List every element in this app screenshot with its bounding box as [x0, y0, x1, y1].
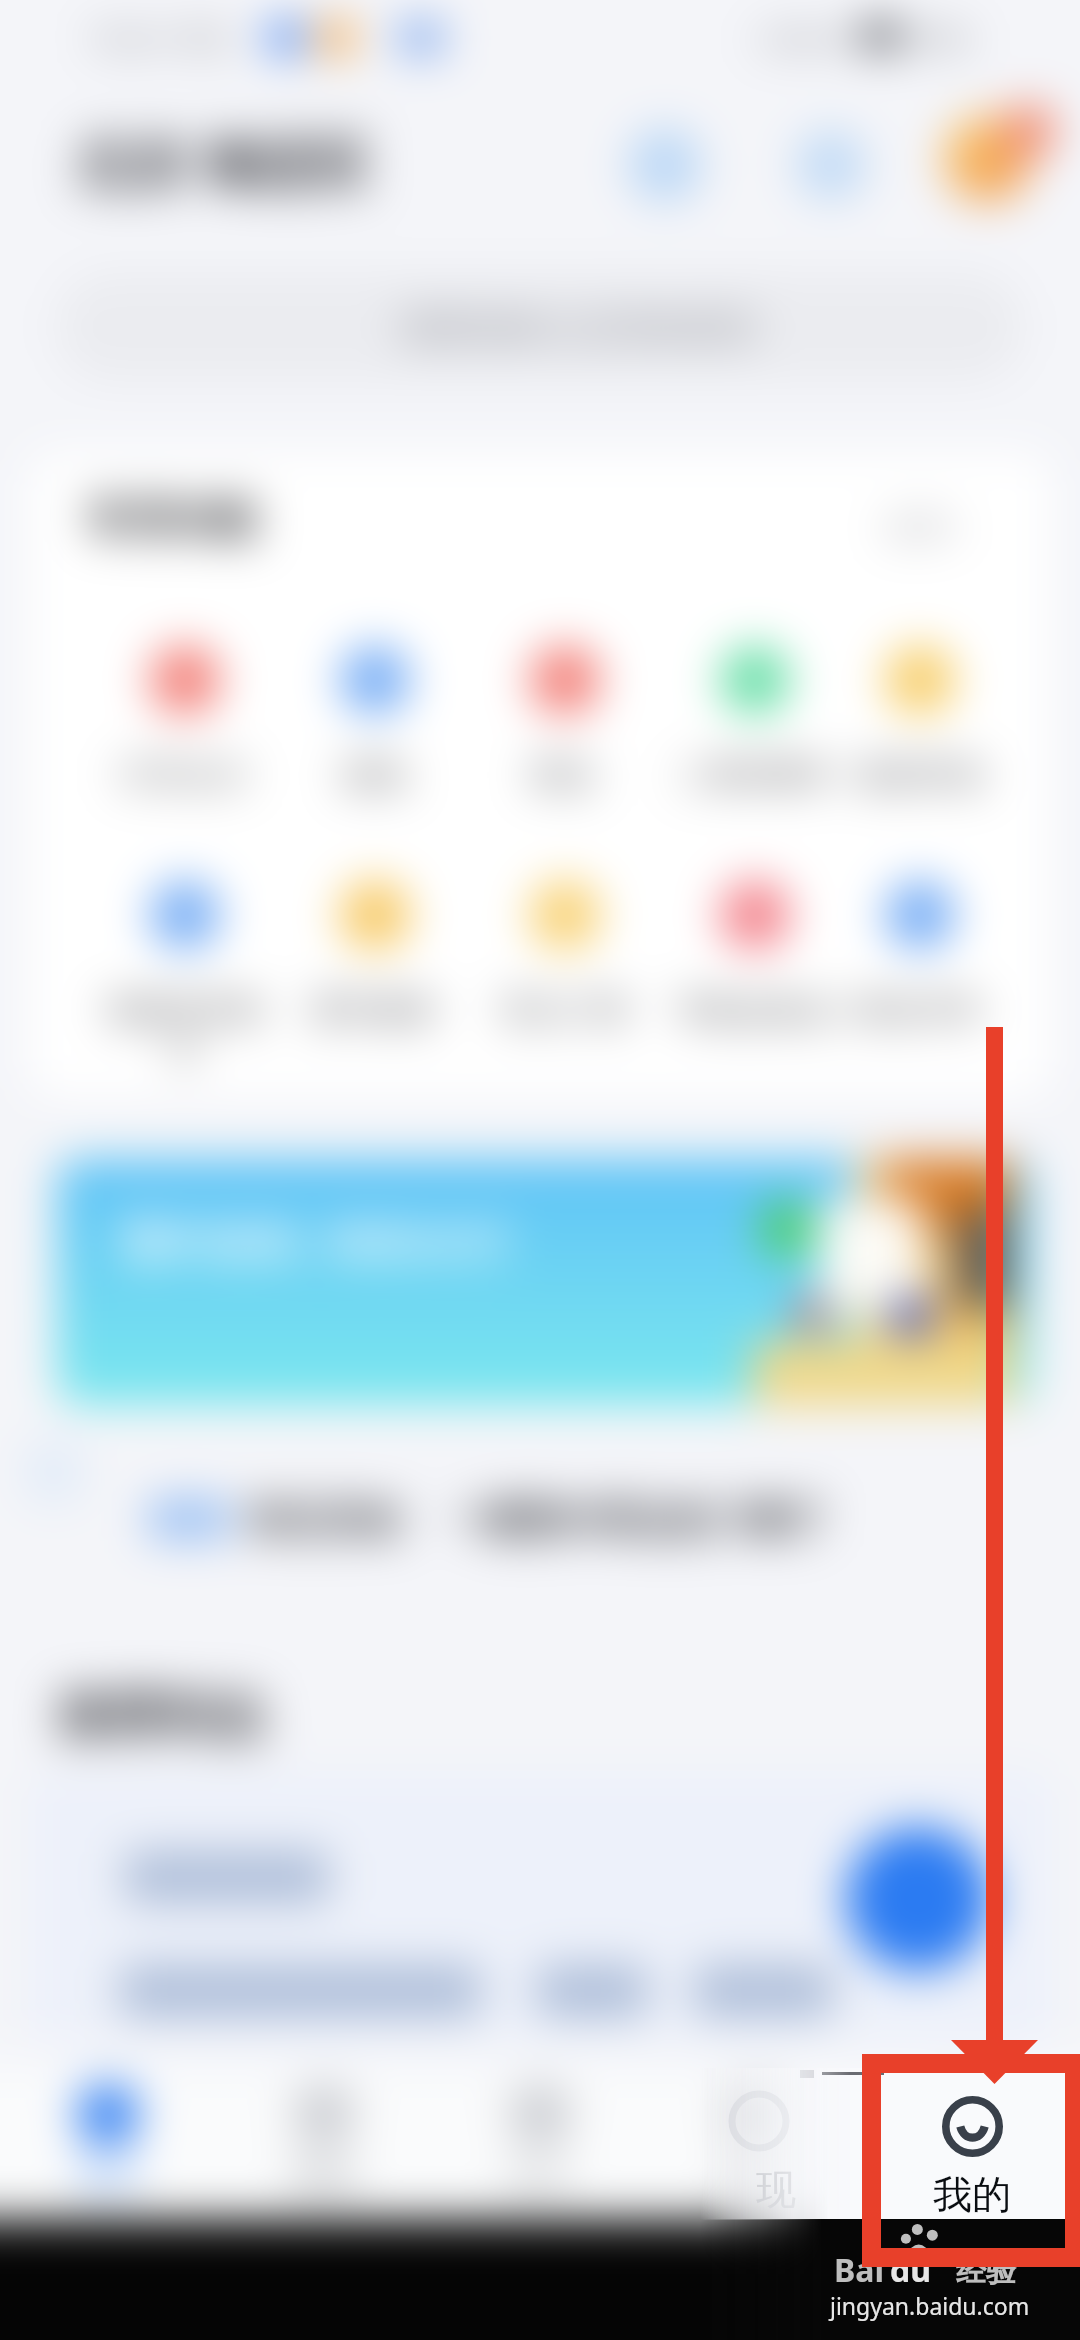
staticText: 附近停车	[856, 990, 984, 1030]
staticText: 经验	[956, 2252, 1016, 2290]
button[interactable]: Profile	[944, 116, 1030, 202]
staticText: 酒店民宿	[856, 755, 984, 795]
button[interactable]	[28, 1771, 1052, 2041]
button[interactable]: 搜索地铁公交美食酒店	[55, 272, 1025, 382]
button[interactable]: 附近美食	[0, 1428, 1080, 1558]
button[interactable]: 爱车服务	[280, 880, 470, 1030]
button[interactable]: Notifications	[628, 128, 702, 202]
staticText: 现	[756, 2164, 796, 2214]
button[interactable]: 附近	[470, 645, 660, 795]
staticText: 一键预约周边热门餐厅	[444, 1496, 824, 1544]
button[interactable]: 导航必备品	[660, 880, 850, 1030]
staticText: 打车出行	[121, 755, 249, 795]
staticText: Bai	[834, 2248, 885, 2292]
staticText: jingyan.baidu.com	[830, 2290, 1030, 2321]
staticText: 86%	[912, 18, 972, 59]
staticText: 推荐到达	[58, 1684, 266, 1750]
button[interactable]: 首页	[0, 2068, 216, 2220]
staticText: 二维码乘车	[675, 755, 835, 795]
staticText: 导航必备品	[675, 990, 835, 1030]
button[interactable]: 智能语音助手	[90, 880, 280, 1074]
staticText: 路线	[292, 2156, 356, 2196]
button[interactable]: 预约送机 轻松出行	[57, 1159, 1031, 1405]
button[interactable]: 发现	[648, 2068, 864, 2220]
staticText: 北京 海淀区	[76, 124, 371, 200]
button[interactable]: 出行	[432, 2068, 648, 2220]
staticText: 首页	[76, 2156, 140, 2196]
button[interactable]: 我的	[864, 2068, 1080, 2220]
staticText: 爱车服务	[311, 990, 439, 1030]
button[interactable]: Messages	[796, 130, 866, 200]
button[interactable]: 我的	[884, 2070, 1060, 2212]
staticText: 附近	[533, 755, 597, 795]
other: Highlight	[0, 0, 1080, 2340]
staticText: 发现	[724, 2156, 788, 2196]
staticText: du	[890, 2248, 932, 2292]
staticText: 我的	[933, 2170, 1011, 2219]
staticText: 常用功能	[88, 494, 256, 547]
button[interactable]: 二维码乘车	[660, 645, 850, 795]
button[interactable]: 附近停车	[850, 880, 990, 1030]
staticText: 预约送机 轻松出行	[119, 1209, 511, 1272]
button[interactable]: 路线	[280, 645, 470, 795]
button[interactable]: 酒店民宿	[850, 645, 990, 795]
button[interactable]: 景点门票	[470, 880, 660, 1030]
staticText: 4.4K/s	[758, 18, 845, 59]
staticText: 智能语音助手	[90, 990, 280, 1074]
staticText: 路线	[343, 755, 407, 795]
button[interactable]: 打车出行	[90, 645, 280, 795]
staticText: 我的	[940, 2156, 1004, 2196]
button[interactable]: 路线	[216, 2068, 432, 2220]
staticText: 出行	[508, 2156, 572, 2196]
staticText: 附近美食	[250, 1496, 402, 1544]
